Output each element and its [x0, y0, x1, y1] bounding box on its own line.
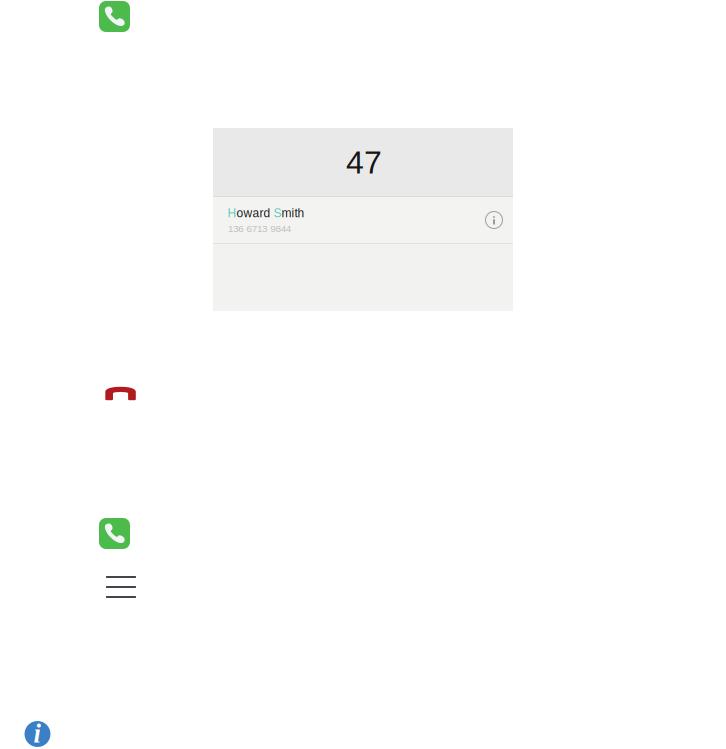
button[interactable]: Call [99, 1, 130, 32]
button[interactable]: H [213, 197, 513, 243]
staticText: 136 6713 9844 [228, 223, 291, 234]
staticText: i [33, 719, 40, 748]
staticText: mith [281, 206, 304, 220]
staticText: H [227, 206, 236, 220]
staticText: oward [236, 206, 273, 220]
button[interactable]: End call [105, 387, 136, 400]
button[interactable]: Call [99, 518, 130, 549]
button[interactable]: Info [24, 721, 50, 747]
staticText: 47 [346, 145, 382, 180]
button[interactable]: Menu [106, 576, 136, 598]
staticText: S [273, 206, 281, 220]
